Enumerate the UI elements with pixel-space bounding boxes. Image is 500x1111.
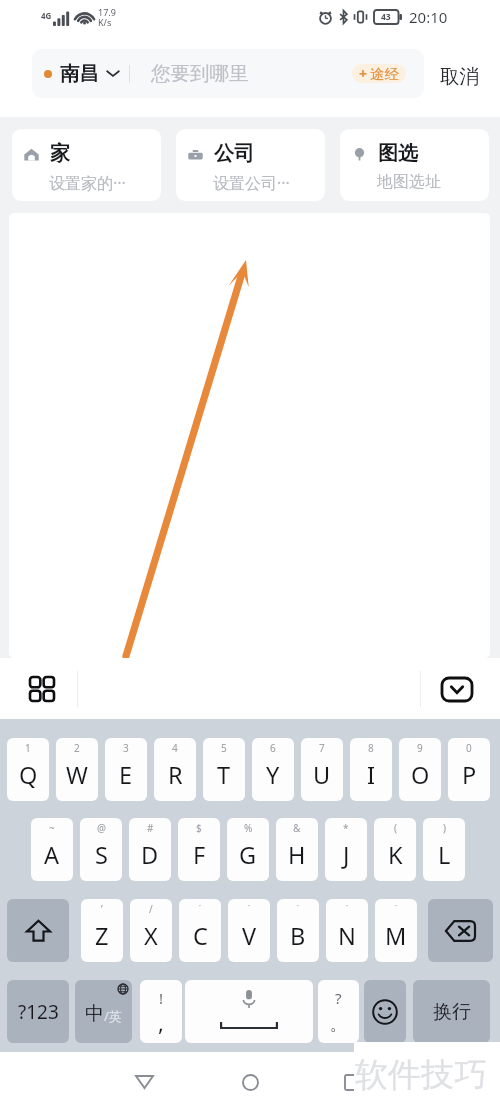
button[interactable]: ) [423, 818, 465, 881]
staticText: + [359, 64, 368, 83]
button[interactable]: ’ [81, 899, 123, 962]
button[interactable]: 取消 [436, 60, 483, 93]
staticText: Y [266, 759, 280, 791]
button[interactable]: 6 [252, 738, 294, 801]
staticText: 取消 [440, 64, 479, 89]
staticText: 9 [417, 741, 423, 755]
staticText: ? [335, 988, 342, 1008]
staticText: W [66, 759, 88, 791]
button[interactable]: 家 [12, 129, 161, 201]
staticText: F [193, 839, 206, 871]
button[interactable]: 中 [75, 980, 132, 1043]
button[interactable]: Backspace [428, 899, 493, 962]
staticText: I [367, 759, 375, 791]
button[interactable]: 5 [203, 738, 245, 801]
staticText: O [411, 759, 430, 791]
staticText: 8 [368, 741, 374, 755]
button[interactable]: 3 [105, 738, 147, 801]
button[interactable]: ˙ [277, 899, 319, 962]
button[interactable]: ~ [31, 818, 73, 881]
button[interactable]: ! [140, 980, 182, 1043]
button[interactable]: $ [178, 818, 220, 881]
staticText: ) [443, 821, 446, 835]
staticText: 0 [466, 741, 472, 755]
staticText: ~ [49, 821, 55, 835]
button[interactable]: Shift [7, 899, 69, 962]
button[interactable]: ?123 [7, 980, 69, 1043]
button[interactable]: # [129, 818, 171, 881]
staticText: A [44, 839, 60, 871]
button[interactable]: 换行 [413, 980, 490, 1043]
staticText: R [168, 759, 183, 791]
staticText: P [462, 759, 477, 791]
button[interactable]: 公司 [176, 129, 325, 201]
button[interactable]: ˙ [179, 899, 221, 962]
button[interactable]: 图选 [340, 129, 489, 201]
staticText: M [385, 920, 407, 952]
staticText: * [343, 821, 349, 835]
button[interactable]: Recents [330, 1060, 374, 1104]
staticText: Q [19, 759, 38, 791]
button[interactable]: Emoji [364, 980, 406, 1043]
staticText: % [244, 821, 253, 835]
staticText: 17.9 [98, 6, 116, 18]
button[interactable]: Hide keyboard [435, 672, 479, 706]
staticText: 3 [123, 741, 129, 755]
button[interactable]: % [227, 818, 269, 881]
staticText: 途经 [370, 65, 399, 83]
button[interactable]: 0 [448, 738, 490, 801]
staticText: $ [196, 821, 202, 835]
button[interactable]: Home [228, 1060, 272, 1104]
button[interactable]: * [325, 818, 367, 881]
staticText: ˙ [199, 902, 201, 916]
staticText: 软件技巧 [355, 1054, 487, 1096]
button[interactable]: + [352, 64, 406, 83]
staticText: 南昌 [60, 61, 99, 86]
staticText: ( [394, 821, 397, 835]
button[interactable]: ˙ [228, 899, 270, 962]
button[interactable]: 南昌 [32, 49, 424, 98]
staticText: 43 [381, 11, 391, 23]
staticText: 。 [330, 1014, 347, 1035]
staticText: H [288, 839, 306, 871]
staticText: G [239, 839, 257, 871]
staticText: ! [159, 988, 164, 1008]
staticText: 20:10 [409, 7, 448, 27]
staticText: U [313, 759, 331, 791]
staticText: J [343, 839, 350, 871]
staticText: T [217, 759, 231, 791]
staticText: 6 [270, 741, 276, 755]
staticText: 设置公司··· [213, 172, 290, 194]
button[interactable]: 9 [399, 738, 441, 801]
button[interactable]: Space [185, 980, 313, 1043]
staticText: 5 [221, 741, 227, 755]
button[interactable]: 4 [154, 738, 196, 801]
button[interactable]: Keyboard panels [20, 667, 64, 711]
staticText: S [95, 839, 108, 871]
button[interactable]: 1 [7, 738, 49, 801]
staticText: Z [95, 920, 109, 952]
button[interactable]: 8 [350, 738, 392, 801]
staticText: 2 [74, 741, 80, 755]
button[interactable]: ˙ [326, 899, 368, 962]
button[interactable]: ( [374, 818, 416, 881]
staticText: 设置家的··· [49, 172, 126, 194]
staticText: 图选 [378, 141, 418, 166]
button[interactable]: ˙ [375, 899, 417, 962]
staticText: ?123 [18, 999, 59, 1025]
staticText: 您要到哪里 [151, 61, 249, 86]
button[interactable]: 2 [56, 738, 98, 801]
button[interactable]: / [130, 899, 172, 962]
button[interactable]: 7 [301, 738, 343, 801]
staticText: ˙ [297, 902, 299, 916]
staticText: 1 [25, 741, 31, 755]
button[interactable]: & [276, 818, 318, 881]
staticText: V [242, 920, 257, 952]
staticText: N [338, 920, 356, 952]
staticText: @ [97, 821, 106, 835]
button[interactable]: @ [80, 818, 122, 881]
button[interactable]: ? [318, 980, 359, 1043]
button[interactable]: Back [122, 1060, 166, 1104]
staticText: X [144, 920, 158, 952]
staticText: / [149, 902, 153, 916]
